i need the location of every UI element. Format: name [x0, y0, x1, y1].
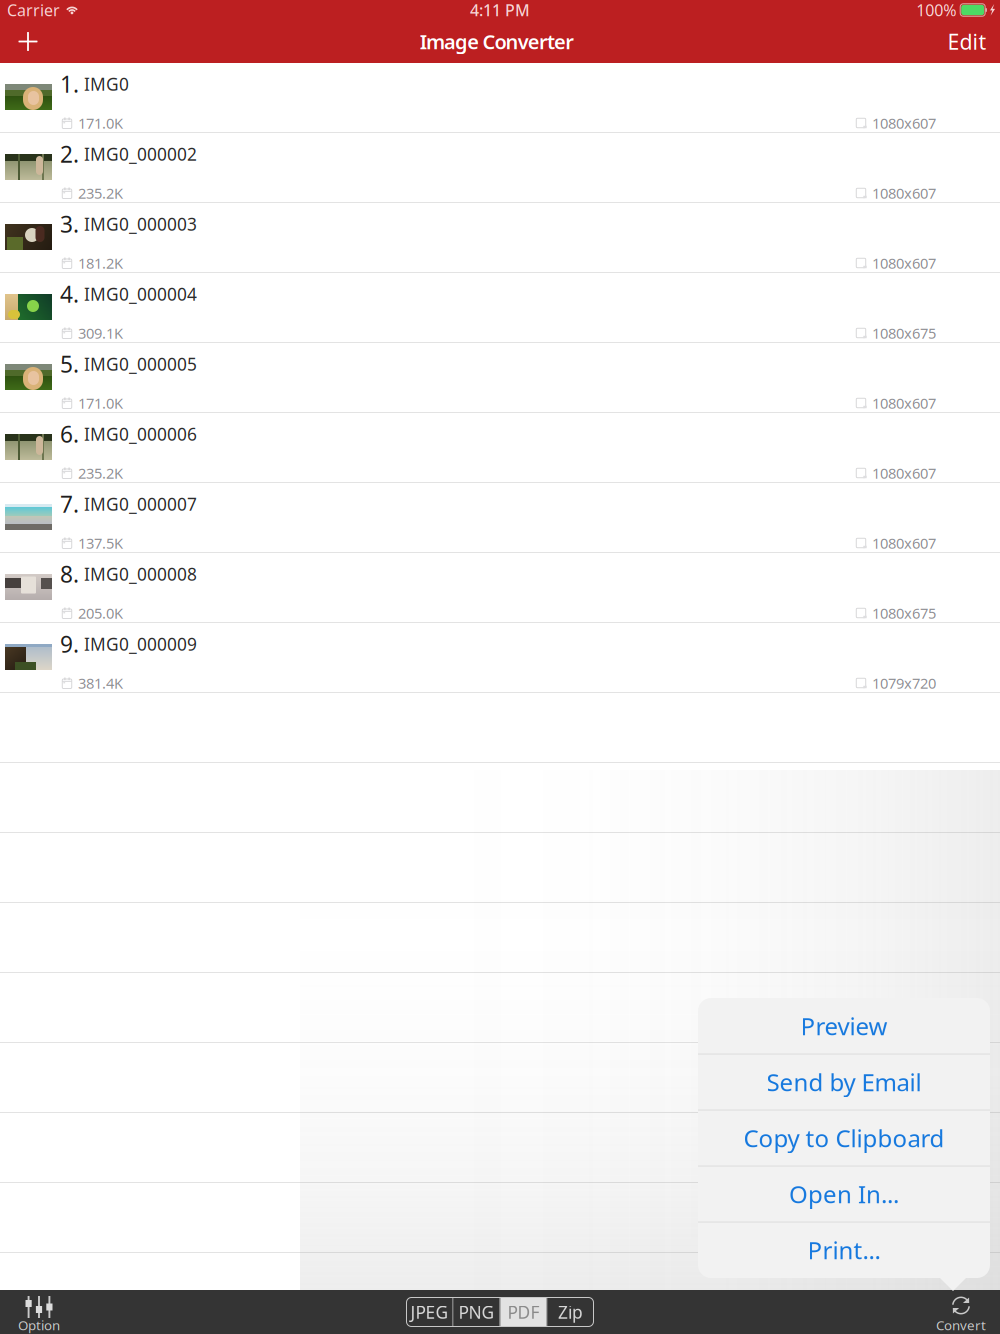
staticText: 171.0K [78, 113, 123, 133]
staticText: 4:11 PM [470, 0, 530, 21]
staticText: Carrier [7, 0, 60, 21]
staticText: 309.1K [78, 323, 123, 343]
staticText: IMG0_000009 [84, 632, 197, 655]
button[interactable]: 5. [0, 343, 1000, 412]
button[interactable]: PDF [500, 1297, 546, 1326]
staticText: IMG0_000005 [84, 352, 197, 375]
staticText: 1080x607 [872, 113, 936, 133]
staticText: 1080x607 [872, 533, 936, 553]
staticText: PNG [458, 1300, 494, 1323]
staticText: 3. [60, 209, 79, 239]
button[interactable]: Edit [938, 19, 996, 63]
button[interactable]: 4. [0, 273, 1000, 342]
button[interactable]: Convert [930, 1290, 992, 1334]
button[interactable]: Zip [547, 1297, 593, 1326]
staticText: IMG0_000004 [84, 282, 197, 305]
staticText: 235.2K [78, 463, 123, 483]
button[interactable]: Add [0, 19, 56, 63]
staticText: IMG0_000003 [84, 212, 197, 235]
button[interactable]: JPEG [406, 1297, 452, 1326]
button[interactable]: 1. [0, 63, 1000, 132]
staticText: 6. [60, 419, 79, 449]
button[interactable]: 8. [0, 553, 1000, 622]
staticText: 381.4K [78, 673, 123, 693]
staticText: 8. [60, 559, 79, 589]
staticText: 7. [60, 489, 79, 519]
staticText: 205.0K [78, 603, 123, 623]
staticText: JPEG [410, 1300, 448, 1323]
staticText: 1079x720 [872, 673, 936, 693]
staticText: 9. [60, 629, 79, 659]
staticText: 137.5K [78, 533, 123, 553]
staticText: 1. [60, 69, 79, 99]
staticText: 181.2K [78, 253, 123, 273]
staticText: IMG0_000008 [84, 562, 197, 585]
button[interactable]: 7. [0, 483, 1000, 552]
staticText: 5. [60, 349, 79, 379]
button[interactable]: 2. [0, 133, 1000, 202]
staticText: 1080x675 [872, 323, 936, 343]
staticText: Open In... [789, 1178, 899, 1210]
staticText: Option [18, 1316, 60, 1334]
staticText: Image Converter [420, 28, 574, 55]
staticText: IMG0_000002 [84, 142, 197, 165]
staticText: 1080x607 [872, 393, 936, 413]
staticText: IMG0_000006 [84, 422, 197, 445]
staticText: Print... [807, 1234, 880, 1266]
staticText: Convert [936, 1316, 986, 1334]
staticText: 1080x675 [872, 603, 936, 623]
staticText: 2. [60, 139, 79, 169]
button[interactable]: Preview [698, 998, 990, 1053]
staticText: 1080x607 [872, 183, 936, 203]
button[interactable]: 9. [0, 623, 1000, 692]
staticText: IMG0_000007 [84, 492, 197, 515]
button[interactable]: Copy to Clipboard [698, 1110, 990, 1165]
button[interactable]: Send by Email [698, 1054, 990, 1109]
staticText: Zip [558, 1300, 583, 1323]
button[interactable]: Print... [698, 1222, 990, 1277]
button[interactable]: 6. [0, 413, 1000, 482]
staticText: 171.0K [78, 393, 123, 413]
staticText: IMG0 [84, 72, 129, 95]
staticText: Send by Email [766, 1066, 921, 1098]
staticText: Copy to Clipboard [743, 1122, 944, 1154]
staticText: Preview [800, 1010, 887, 1042]
button[interactable]: Open In... [698, 1166, 990, 1221]
staticText: 100% [916, 0, 956, 21]
staticText: PDF [507, 1300, 539, 1323]
staticText: 1080x607 [872, 463, 936, 483]
staticText: Edit [947, 27, 986, 56]
button[interactable]: 3. [0, 203, 1000, 272]
staticText: 235.2K [78, 183, 123, 203]
button[interactable]: Option [8, 1290, 70, 1334]
button[interactable]: PNG [453, 1297, 499, 1326]
staticText: 4. [60, 279, 79, 309]
staticText: 1080x607 [872, 253, 936, 273]
